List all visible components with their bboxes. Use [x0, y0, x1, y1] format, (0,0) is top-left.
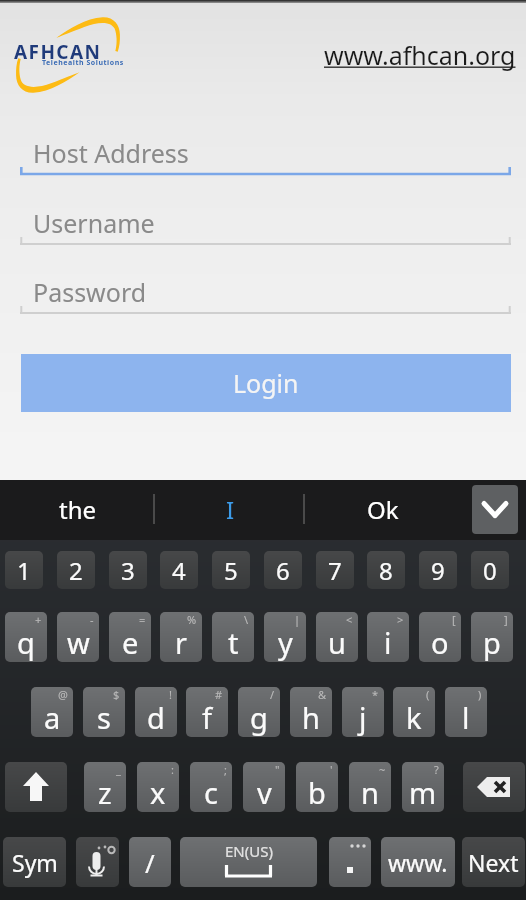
button[interactable]: u: [316, 612, 358, 662]
staticText: b: [308, 773, 326, 812]
staticText: Password: [33, 275, 147, 309]
button[interactable]: d: [135, 687, 177, 737]
staticText: 6: [276, 554, 290, 587]
button[interactable]: Space: [180, 837, 317, 887]
button[interactable]: s: [83, 687, 125, 737]
button[interactable]: r: [160, 612, 202, 662]
button[interactable]: x: [137, 762, 179, 812]
button[interactable]: c: [190, 762, 232, 812]
button[interactable]: m: [402, 762, 444, 812]
button[interactable]: /: [129, 837, 171, 887]
button[interactable]: I: [155, 480, 305, 538]
button[interactable]: p: [471, 612, 513, 662]
staticText: www.: [388, 847, 448, 878]
staticText: r: [175, 623, 187, 662]
button[interactable]: 0: [471, 551, 509, 589]
button[interactable]: h: [290, 687, 332, 737]
staticText: 9: [431, 554, 445, 587]
staticText: 8: [379, 554, 393, 587]
staticText: Username: [33, 206, 155, 240]
staticText: 4: [172, 554, 186, 587]
button[interactable]: k: [393, 687, 435, 737]
staticText: o: [431, 623, 449, 662]
button[interactable]: Password: [20, 273, 511, 318]
button[interactable]: q: [5, 612, 47, 662]
button[interactable]: 6: [264, 551, 302, 589]
staticText: 1: [17, 554, 31, 587]
button[interactable]: www.afhcan.org: [324, 36, 520, 74]
button[interactable]: t: [212, 612, 254, 662]
staticText: f: [202, 698, 212, 737]
staticText: >: [397, 612, 404, 627]
button[interactable]: j: [342, 687, 384, 737]
button[interactable]: i: [367, 612, 409, 662]
button[interactable]: 7: [316, 551, 354, 589]
staticText: c: [204, 773, 218, 812]
button[interactable]: Host Address: [20, 134, 511, 179]
staticText: e: [122, 623, 139, 662]
button[interactable]: Ok: [305, 480, 460, 538]
staticText: Sym: [12, 847, 58, 878]
button[interactable]: Backspace: [463, 762, 525, 812]
staticText: h: [302, 698, 320, 737]
staticText: #: [215, 687, 223, 702]
staticText: :: [171, 762, 174, 777]
button[interactable]: z: [84, 762, 126, 812]
button[interactable]: f: [186, 687, 228, 737]
staticText: Host Address: [33, 136, 189, 170]
staticText: !: [169, 687, 172, 702]
button[interactable]: v: [243, 762, 285, 812]
button[interactable]: a: [31, 687, 73, 737]
staticText: <: [346, 612, 353, 627]
staticText: 2: [69, 554, 83, 587]
button[interactable]: Username: [20, 204, 511, 249]
button[interactable]: Login: [21, 354, 511, 412]
button[interactable]: www.: [381, 837, 455, 887]
staticText: i: [384, 623, 392, 662]
staticText: *: [372, 687, 379, 702]
button[interactable]: e: [109, 612, 151, 662]
button[interactable]: Shift: [5, 762, 67, 812]
button[interactable]: n: [349, 762, 391, 812]
staticText: p: [483, 623, 501, 662]
button[interactable]: y: [264, 612, 306, 662]
staticText: Next: [468, 847, 519, 878]
button[interactable]: b: [296, 762, 338, 812]
button[interactable]: Next: [462, 837, 525, 887]
staticText: the: [59, 493, 97, 526]
staticText: g: [250, 698, 268, 737]
staticText: [: [452, 612, 456, 627]
staticText: ): [478, 687, 482, 702]
button[interactable]: 3: [109, 551, 147, 589]
staticText: Login: [233, 366, 299, 400]
staticText: j: [359, 698, 367, 737]
staticText: 3: [121, 554, 135, 587]
button[interactable]: 5: [212, 551, 250, 589]
button[interactable]: 8: [367, 551, 405, 589]
staticText: (: [426, 687, 430, 702]
button[interactable]: 1: [5, 551, 43, 589]
button[interactable]: Sym: [3, 837, 66, 887]
button[interactable]: Voice input: [76, 837, 119, 887]
staticText: d: [147, 698, 165, 737]
button[interactable]: o: [419, 612, 461, 662]
staticText: ?: [434, 762, 439, 777]
button[interactable]: the: [0, 480, 155, 538]
button[interactable]: Hide suggestions: [472, 485, 518, 534]
staticText: l: [462, 698, 470, 737]
button[interactable]: g: [238, 687, 280, 737]
staticText: Telehealth Solutions: [42, 58, 124, 68]
button[interactable]: 9: [419, 551, 457, 589]
staticText: ]: [504, 612, 508, 627]
staticText: $: [113, 687, 120, 702]
button[interactable]: w: [57, 612, 99, 662]
staticText: u: [328, 623, 346, 662]
button[interactable]: 2: [57, 551, 95, 589]
staticText: m: [409, 773, 437, 812]
button[interactable]: Period: [329, 837, 371, 887]
button[interactable]: 4: [160, 551, 198, 589]
button[interactable]: l: [445, 687, 487, 737]
staticText: _: [116, 762, 121, 777]
staticText: &: [318, 687, 327, 702]
staticText: I: [226, 493, 235, 526]
